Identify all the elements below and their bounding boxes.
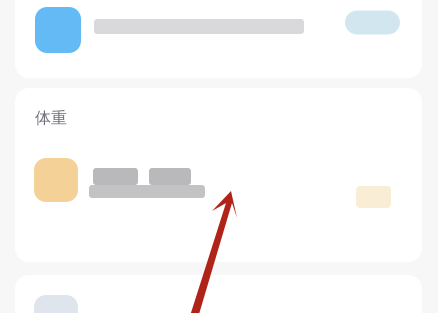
staticText: 体重 (35, 108, 67, 128)
button[interactable] (0, 295, 438, 313)
button[interactable] (0, 7, 438, 53)
button[interactable] (0, 160, 438, 206)
